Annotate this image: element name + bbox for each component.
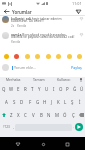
- button[interactable]: L: [62, 95, 69, 108]
- button[interactable]: Ö: [61, 108, 69, 121]
- button[interactable]: Z: [8, 108, 15, 121]
- staticText: asmLa Bonusfood enyuk hasandan olbirkik …: [11, 32, 77, 39]
- staticText: N: [47, 112, 51, 118]
- button[interactable]: Emoji: [76, 53, 82, 59]
- staticText: ,: [13, 125, 14, 129]
- button[interactable]: O: [57, 82, 64, 95]
- button[interactable]: Backspace: [77, 108, 85, 121]
- button[interactable]: J: [48, 95, 55, 108]
- staticText: U: [45, 86, 49, 92]
- button[interactable]: Emoji: [45, 53, 51, 59]
- button[interactable]: K: [55, 95, 62, 108]
- staticText: 11:01: [72, 1, 82, 6]
- staticText: Ö: [63, 112, 67, 118]
- staticText: T: [31, 86, 34, 92]
- staticText: O: [59, 86, 63, 92]
- staticText: Merhaba: [6, 77, 21, 82]
- button[interactable]: ?123: [1, 121, 12, 133]
- button[interactable]: Ü: [78, 82, 85, 95]
- button[interactable]: Emoji: [66, 53, 72, 59]
- button[interactable]: Kullanıcı: [51, 77, 76, 82]
- button[interactable]: Emoji: [24, 53, 30, 59]
- staticText: kullanici_adi hayir tekrar ederim kutlar…: [11, 16, 77, 23]
- staticText: L: [64, 99, 67, 105]
- staticText: .: [73, 125, 74, 129]
- button[interactable]: P: [64, 82, 71, 95]
- staticText: Ç: [72, 112, 75, 118]
- button[interactable]: Emoji: [34, 53, 40, 59]
- staticText: K: [57, 99, 60, 105]
- button[interactable]: Send: [75, 123, 83, 131]
- staticText: X: [17, 112, 20, 118]
- staticText: C: [24, 112, 27, 118]
- button[interactable]: H: [41, 95, 48, 108]
- button[interactable]: Back: [12, 138, 24, 150]
- button[interactable]: D: [18, 95, 26, 108]
- staticText: Tamam: [33, 77, 45, 82]
- button[interactable]: Home: [37, 138, 49, 150]
- button[interactable]: T: [29, 82, 36, 95]
- staticText: Ü: [80, 86, 84, 92]
- staticText: Kullanıcı: [57, 77, 71, 82]
- staticText: Yorumlar: [12, 9, 32, 15]
- button[interactable]: V: [29, 108, 37, 121]
- staticText: Yanıtla: [11, 40, 21, 44]
- button[interactable]: Y: [36, 82, 43, 95]
- staticText: G: [36, 99, 40, 105]
- button[interactable]: M: [53, 108, 61, 121]
- button[interactable]: Like: [78, 16, 84, 22]
- button[interactable]: N: [45, 108, 53, 121]
- staticText: I: [53, 86, 55, 92]
- button[interactable]: Share: [74, 7, 83, 16]
- staticText: Q: [2, 86, 6, 92]
- staticText: Ğ: [73, 86, 77, 92]
- staticText: A: [5, 99, 8, 105]
- staticText: V: [32, 112, 35, 118]
- button[interactable]: Period: [72, 121, 75, 133]
- button[interactable]: E: [15, 82, 22, 95]
- button[interactable]: I: [50, 82, 57, 95]
- button[interactable]: C: [22, 108, 29, 121]
- button[interactable]: F: [26, 95, 34, 108]
- button[interactable]: R: [22, 82, 29, 95]
- button[interactable]: Ğ: [71, 82, 78, 95]
- button[interactable]: Emoji: [3, 53, 9, 59]
- button[interactable]: Recents: [61, 138, 73, 150]
- button[interactable]: Comma: [12, 121, 15, 133]
- button[interactable]: S: [10, 95, 18, 108]
- button[interactable]: W: [8, 82, 15, 95]
- button[interactable]: asmLa Bonusfood enyuk hasandan olbirkik …: [0, 32, 85, 44]
- button[interactable]: kullanici_adi hayir tekrar ederim kutlar…: [0, 16, 85, 28]
- staticText: R: [24, 86, 27, 92]
- button[interactable]: U: [43, 82, 50, 95]
- staticText: E: [17, 86, 20, 92]
- staticText: W: [9, 86, 14, 92]
- button[interactable]: X: [15, 108, 22, 121]
- button[interactable]: A: [2, 95, 10, 108]
- button[interactable]: Ç: [69, 108, 77, 121]
- button[interactable]: Voice input: [76, 77, 85, 82]
- button[interactable]: Like: [78, 32, 84, 38]
- staticText: H: [43, 99, 47, 105]
- button[interactable]: Emoji: [55, 53, 61, 59]
- button[interactable]: Shift: [0, 108, 8, 121]
- button[interactable]: Q: [0, 82, 8, 95]
- button[interactable]: Paylaş: [70, 65, 83, 70]
- staticText: S: [13, 99, 16, 105]
- button[interactable]: G: [34, 95, 41, 108]
- staticText: Y: [38, 86, 41, 92]
- button[interactable]: B: [37, 108, 45, 121]
- staticText: Yorum ekle...: [14, 65, 36, 70]
- button[interactable]: Tamam: [26, 77, 51, 82]
- button[interactable]: Emoji: [13, 53, 19, 59]
- button[interactable]: Back: [2, 7, 11, 16]
- staticText: İ: [79, 99, 81, 105]
- staticText: P: [66, 86, 69, 92]
- button[interactable]: İ: [76, 95, 83, 108]
- staticText: Z: [10, 112, 13, 118]
- button[interactable]: Ş: [69, 95, 76, 108]
- staticText: J: [51, 99, 53, 105]
- staticText: Paylaş: [71, 65, 82, 70]
- button[interactable]: Merhaba: [0, 77, 26, 82]
